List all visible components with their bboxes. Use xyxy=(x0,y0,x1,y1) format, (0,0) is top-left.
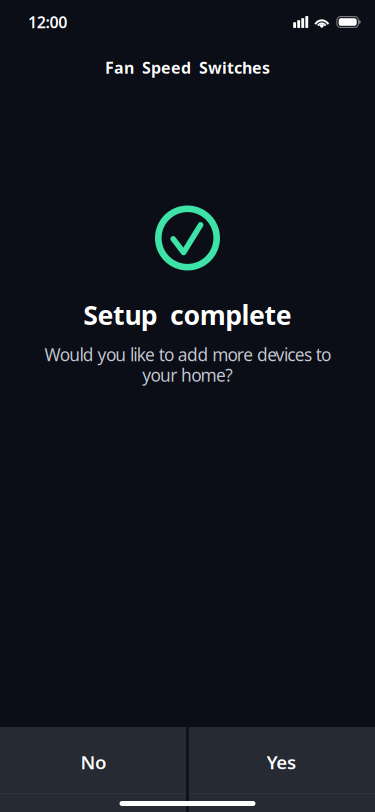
button[interactable]: No xyxy=(0,727,187,797)
button[interactable]: Yes xyxy=(187,727,375,797)
staticText: No xyxy=(80,750,107,774)
staticText: Setup complete xyxy=(83,297,292,332)
staticText: Fan Speed Switches xyxy=(105,57,270,78)
staticText: Yes xyxy=(266,750,296,774)
staticText: Would you like to add more devices to yo… xyxy=(44,343,331,386)
staticText: 12:00 xyxy=(28,11,67,33)
